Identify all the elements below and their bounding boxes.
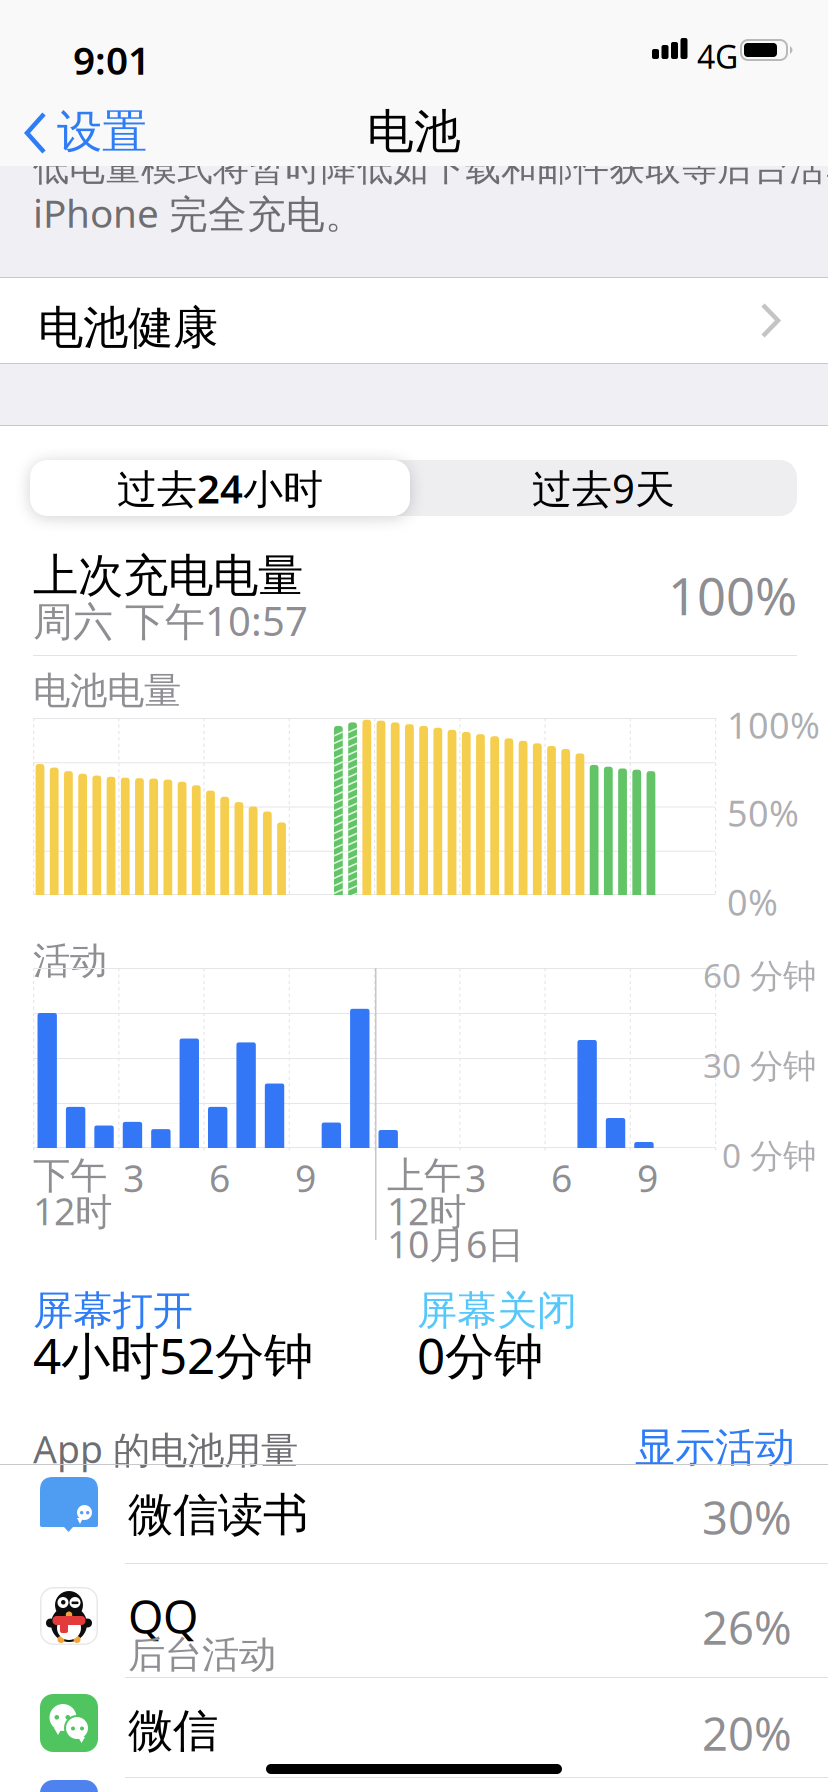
- staticText: 9: [295, 1153, 316, 1203]
- staticText: 9:01: [73, 34, 150, 85]
- staticText: 设置: [57, 104, 147, 160]
- button[interactable]: 过去24小时: [30, 460, 410, 516]
- staticText: 低电量模式将暂时降低如下载和邮件获取等后台活动，直至: [33, 146, 828, 190]
- staticText: 周六 下午10:57: [33, 594, 308, 647]
- button[interactable]: 电池健康: [0, 277, 828, 364]
- staticText: 100%: [727, 701, 820, 749]
- staticText: 后台活动: [128, 1632, 276, 1678]
- staticText: 26%: [702, 1597, 792, 1657]
- button[interactable]: 设置: [0, 104, 140, 160]
- staticText: 6: [551, 1153, 572, 1203]
- staticText: 10月6日: [387, 1219, 524, 1269]
- staticText: 屏幕关闭: [417, 1286, 577, 1335]
- staticText: iPhone 完全充电。: [33, 187, 364, 238]
- staticText: 3: [123, 1153, 144, 1203]
- staticText: 20%: [702, 1703, 792, 1763]
- staticText: 电池电量: [33, 668, 181, 714]
- staticText: 过去24小时: [117, 461, 323, 514]
- staticText: QQ: [128, 1586, 198, 1646]
- button[interactable]: 过去9天: [410, 460, 797, 516]
- staticText: 3: [465, 1153, 486, 1203]
- staticText: 过去9天: [532, 461, 675, 514]
- staticText: 活动: [33, 938, 107, 984]
- staticText: 4G: [697, 35, 738, 77]
- button[interactable]: 显示活动: [33, 1423, 795, 1472]
- staticText: 12时: [33, 1186, 112, 1236]
- button[interactable]: QQ: [0, 1570, 828, 1670]
- staticText: 0分钟: [417, 1322, 543, 1387]
- staticText: 9: [637, 1153, 658, 1203]
- staticText: 30%: [702, 1487, 792, 1547]
- staticText: 屏幕打开: [33, 1286, 193, 1335]
- staticText: App 的电池用量: [33, 1424, 298, 1474]
- staticText: 30 分钟: [703, 1043, 816, 1087]
- staticText: 6: [209, 1153, 230, 1203]
- staticText: 上次充电电量: [33, 548, 303, 604]
- staticText: 12时: [387, 1186, 466, 1236]
- staticText: 电池: [367, 103, 461, 160]
- button[interactable]: 微信: [0, 1680, 828, 1780]
- staticText: 0%: [727, 878, 778, 926]
- staticText: 50%: [727, 789, 799, 837]
- staticText: 电池健康: [38, 300, 218, 356]
- staticText: 4小时52分钟: [33, 1322, 313, 1387]
- staticText: 100%: [668, 562, 797, 629]
- staticText: 下午: [33, 1153, 107, 1199]
- staticText: 微信读书: [128, 1487, 308, 1543]
- staticText: 微信: [128, 1703, 218, 1759]
- staticText: 上午: [387, 1153, 461, 1199]
- staticText: 60 分钟: [703, 953, 816, 997]
- staticText: 显示活动: [635, 1423, 795, 1472]
- button[interactable]: 微信读书: [0, 1465, 828, 1565]
- staticText: 0 分钟: [722, 1133, 816, 1177]
